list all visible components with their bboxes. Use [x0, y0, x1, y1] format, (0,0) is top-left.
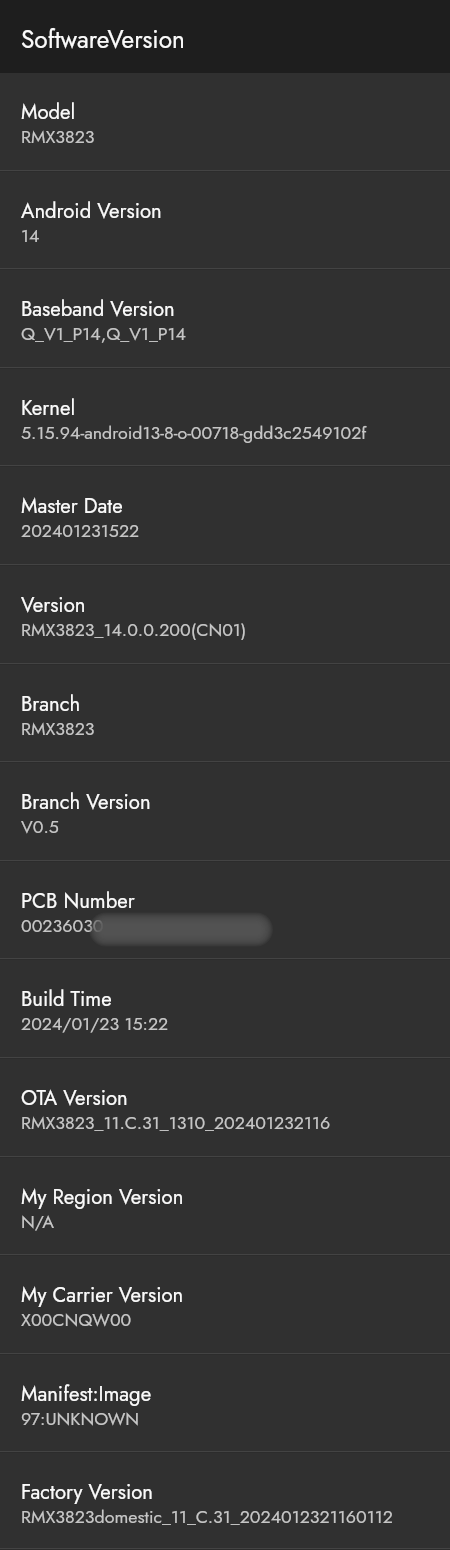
staticText: My Region Version	[21, 1182, 184, 1211]
staticText: RMX3823	[21, 124, 95, 150]
button[interactable]: Branch Version	[0, 763, 450, 862]
staticText: N/A	[21, 1209, 54, 1235]
staticText: Build Time	[21, 984, 112, 1013]
button[interactable]: Android Version	[0, 172, 450, 270]
staticText: OTA Version	[21, 1083, 128, 1112]
button[interactable]: OTA Version	[0, 1059, 450, 1158]
staticText: RMX3823domestic_11_C.31_2024012321160112	[21, 1504, 393, 1530]
button[interactable]: Model	[0, 73, 450, 172]
staticText: 2024/01/23 15:22	[21, 1011, 169, 1037]
staticText: Branch	[21, 689, 81, 718]
button[interactable]: Build Time	[0, 960, 450, 1059]
staticText: Android Version	[21, 196, 162, 225]
staticText: 00236030	[21, 913, 104, 939]
staticText: Version	[21, 590, 86, 619]
staticText: RMX3823_11.C.31_1310_202401232116	[21, 1110, 331, 1136]
staticText: RMX3823_14.0.0.200(CN01)	[21, 617, 247, 643]
button[interactable]: Baseband Version	[0, 270, 450, 369]
staticText: PCB Number	[21, 886, 135, 915]
button[interactable]: SoftwareVersion	[0, 0, 450, 73]
staticText: X00CNQW00	[21, 1307, 132, 1333]
staticText: 202401231522	[21, 518, 140, 544]
staticText: Master Date	[21, 491, 123, 520]
staticText: Factory Version	[21, 1477, 153, 1506]
staticText: Model	[21, 97, 76, 126]
staticText: SoftwareVersion	[21, 22, 185, 57]
staticText: 14	[21, 223, 40, 249]
staticText: Q_V1_P14,Q_V1_P14	[21, 321, 186, 347]
button[interactable]: My Region Version	[0, 1158, 450, 1256]
button[interactable]: Manifest:Image	[0, 1355, 450, 1453]
button[interactable]: My Carrier Version	[0, 1256, 450, 1355]
staticText: RMX3823	[21, 716, 95, 742]
staticText: 5.15.94-android13-8-o-00718-gdd3c2549102…	[21, 420, 367, 446]
staticText: Manifest:Image	[21, 1379, 152, 1408]
staticText: V0.5	[21, 814, 59, 840]
staticText: My Carrier Version	[21, 1280, 184, 1309]
button[interactable]: Branch	[0, 665, 450, 763]
staticText: Kernel	[21, 393, 76, 422]
button[interactable]: Factory Version	[0, 1453, 450, 1550]
button[interactable]: Kernel	[0, 369, 450, 467]
button[interactable]: Master Date	[0, 467, 450, 566]
button[interactable]: Version	[0, 566, 450, 665]
button[interactable]: PCB Number	[0, 862, 450, 960]
staticText: 97:UNKNOWN	[21, 1406, 140, 1432]
staticText: Branch Version	[21, 787, 151, 816]
staticText: Baseband Version	[21, 294, 175, 323]
